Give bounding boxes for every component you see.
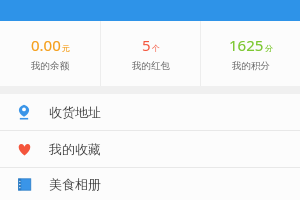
other: 收货地址 (16, 104, 32, 120)
button[interactable]: 0.00 (0, 21, 100, 72)
button[interactable]: 美食相册 (0, 168, 300, 200)
other: 我的收藏 (16, 141, 32, 157)
button[interactable]: 5 (101, 21, 200, 72)
button[interactable]: 1625 (201, 21, 300, 72)
staticText: 个 (152, 43, 160, 53)
staticText: 5 (142, 35, 151, 55)
button[interactable]: 我的收藏 (0, 131, 300, 167)
staticText: 我的余额 (31, 60, 69, 72)
staticText: 1625 (229, 35, 264, 55)
staticText: 我的积分 (232, 60, 270, 72)
staticText: 美食相册 (49, 176, 101, 192)
other: 美食相册 (16, 176, 32, 192)
staticText: 我的收藏 (49, 141, 101, 157)
button[interactable]: 收货地址 (0, 94, 300, 130)
staticText: 收货地址 (49, 104, 101, 120)
staticText: 元 (62, 43, 70, 53)
staticText: 我的红包 (132, 60, 170, 72)
staticText: 分 (265, 43, 273, 53)
staticText: 0.00 (31, 35, 61, 55)
